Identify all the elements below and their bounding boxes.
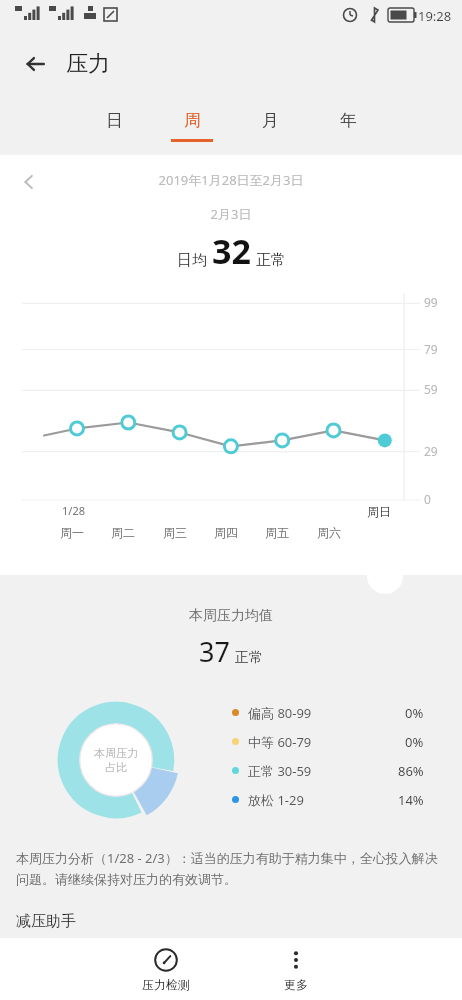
staticText: 日 [106,110,123,131]
staticText: 29 [424,443,438,459]
staticText: 37 [199,633,230,670]
staticText: 周三 [163,525,187,540]
staticText: 压力 [66,50,110,78]
staticText: 正常 [256,251,286,270]
button[interactable]: 更多 [241,938,351,1000]
staticText: 2019年1月28日至2月3日 [0,171,462,189]
button[interactable]: 正常 30-59 [232,756,462,785]
button[interactable]: 日 [86,96,142,155]
button[interactable]: Back [14,42,58,86]
staticText: 2月3日 [0,205,462,223]
button[interactable]: Previous week [10,163,48,201]
staticText: 压力检测 [142,977,190,992]
staticText: 1/28 [62,503,85,518]
staticText: 59 [424,381,438,397]
staticText: 14% [398,791,424,809]
staticText: 正常 30-59 [248,762,312,780]
staticText: 占比 [105,760,127,774]
staticText: 本周压力均值 [0,607,462,625]
staticText: 本周压力 [94,746,138,760]
staticText: 减压助手 [16,912,76,931]
staticText: 周六 [317,525,341,540]
staticText: 0% [405,733,424,751]
staticText: 0% [405,704,424,722]
button[interactable]: 周 [164,96,220,155]
staticText: 偏高 80-99 [248,704,312,722]
staticText: 周日 [367,504,391,519]
staticText: 日均 [177,251,207,270]
button[interactable]: 放松 1-29 [232,785,462,814]
button[interactable]: 月 [242,96,298,155]
staticText: 86% [398,762,424,780]
staticText: 放松 1-29 [248,791,304,809]
staticText: 0 [424,491,431,507]
button[interactable]: 年 [320,96,376,155]
staticText: 正常 [235,649,263,667]
staticText: 周二 [111,525,135,540]
staticText: 年 [340,110,357,131]
button[interactable]: 偏高 80-99 [232,698,462,727]
staticText: 32 [212,228,251,274]
staticText: 周 [184,110,201,131]
staticText: 周五 [265,525,289,540]
button[interactable]: 中等 60-79 [232,727,462,756]
button[interactable]: 压力检测 [111,938,221,1000]
staticText: 更多 [284,977,308,992]
staticText: 79 [424,341,438,357]
staticText: 周一 [60,525,84,540]
staticText: 本周压力分析（1/28 - 2/3）：适当的压力有助于精力集中，全心投入解决问题… [16,849,446,888]
staticText: 99 [424,294,438,310]
staticText: 中等 60-79 [248,733,312,751]
staticText: 19:28 [418,7,452,25]
staticText: 周四 [214,525,238,540]
staticText: 月 [262,110,279,131]
